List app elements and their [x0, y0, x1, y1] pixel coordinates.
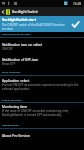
button[interactable]: Monitoring time [0, 104, 84, 117]
staticText: 16:28 [73, 2, 82, 6]
staticText: If the state of ON/OFF exceeded monitori… [2, 109, 81, 117]
staticText: Notification of OFF-icon [2, 57, 39, 61]
staticText: SAFETY SETTINGS [2, 99, 22, 102]
staticText: ON/OFF [2, 47, 13, 51]
button[interactable]: Notification of OFF-icon [0, 57, 84, 66]
staticText: Turned ON/OFF its automatic operation ac… [2, 83, 81, 91]
button[interactable]: About Pro Version [0, 133, 84, 137]
button[interactable]: Enable BacklightSwitch [67, 16, 84, 32]
button[interactable]: Notification icon on select [0, 42, 84, 51]
button[interactable]: BacklightSwitch start [0, 16, 84, 32]
staticText: AUTO SETTINGS [2, 71, 20, 74]
staticText: Application select [2, 78, 30, 82]
staticText: The ON/OFF switch of the BLACKLIGHT func… [2, 23, 66, 31]
staticText: BacklightSwitch start [2, 18, 37, 22]
button[interactable]: Navigate up [0, 7, 5, 16]
staticText: INFORMATION [2, 124, 19, 127]
staticText: About Pro Version [2, 133, 30, 137]
button[interactable]: Application select [0, 78, 84, 91]
staticText: NOTIFICATION SETTINGS [2, 33, 31, 36]
staticText: Backlight Switch [12, 9, 38, 14]
staticText: Notification icon on select [2, 42, 43, 46]
staticText: Monitoring time [2, 104, 28, 108]
staticText: Show OFF [2, 62, 16, 66]
